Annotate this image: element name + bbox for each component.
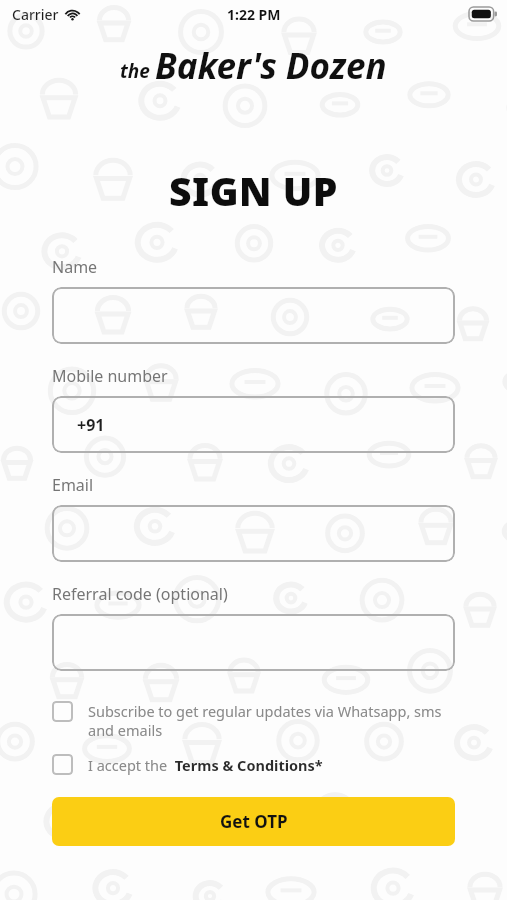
button[interactable]: Checkbox [52,754,73,775]
staticText: I accept the [88,755,171,775]
button[interactable]: Checkbox [52,701,455,740]
staticText: the [120,58,155,84]
button[interactable]: Terms & Conditions* [171,755,323,775]
staticText: Referral code (optional) [52,583,228,605]
button[interactable] [52,505,455,562]
button[interactable]: Get OTP [52,797,455,846]
staticText: +91 [77,414,105,436]
staticText: Baker's Dozen [155,42,387,90]
button[interactable] [52,614,455,671]
button[interactable] [52,287,455,344]
button[interactable]: Checkbox [52,701,73,722]
staticText: Subscribe to get regular updates via Wha… [88,701,455,740]
staticText: Name [52,256,98,278]
staticText: Mobile number [52,365,168,387]
button[interactable]: +91 [52,396,455,453]
staticText: Email [52,474,94,496]
staticText: Carrier [12,5,59,24]
button[interactable]: Checkbox [52,754,455,775]
staticText: SIGN UP [0,164,507,217]
staticText: Get OTP [220,810,288,833]
staticText: 1:22 PM [227,5,281,24]
